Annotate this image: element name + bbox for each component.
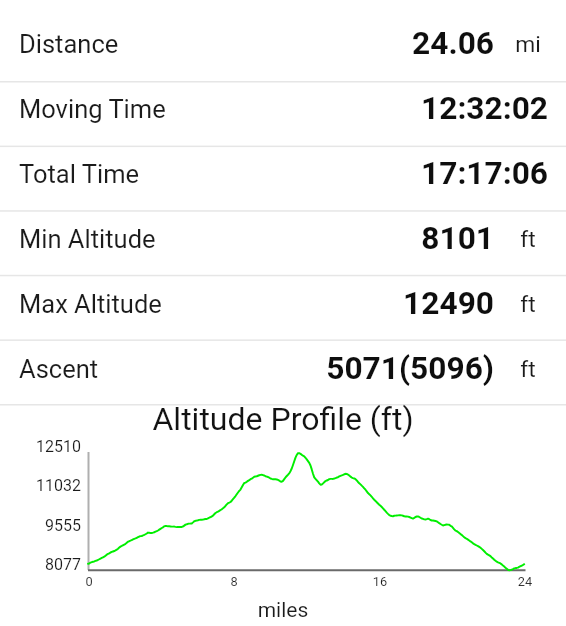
staticText: 12490 — [0, 285, 494, 322]
staticText: 9555 — [0, 516, 81, 535]
button[interactable]: Total Time — [0, 146, 566, 211]
button[interactable]: Min Altitude — [0, 211, 566, 276]
staticText: Distance — [19, 29, 119, 59]
staticText: ft — [494, 226, 562, 253]
button[interactable]: Ascent — [0, 341, 566, 406]
staticText: 12:32:02 — [0, 90, 548, 127]
staticText: 0 — [59, 574, 119, 589]
staticText: ft — [494, 356, 562, 383]
staticText: Ascent — [19, 354, 99, 384]
button[interactable]: Max Altitude — [0, 276, 566, 341]
button[interactable]: Moving Time — [0, 81, 566, 146]
staticText: 8077 — [0, 555, 81, 574]
staticText: 17:17:06 — [0, 155, 548, 192]
staticText: Min Altitude — [19, 224, 156, 254]
staticText: 8 — [204, 574, 264, 589]
staticText: Altitude Profile (ft) — [0, 400, 566, 438]
staticText: 5071(5096) — [0, 350, 494, 387]
staticText: 12510 — [0, 437, 81, 456]
staticText: 16 — [350, 574, 410, 589]
staticText: 24 — [495, 574, 555, 589]
staticText: mi — [494, 31, 562, 58]
staticText: Moving Time — [19, 94, 166, 124]
staticText: Total Time — [19, 159, 140, 189]
staticText: ft — [494, 291, 562, 318]
staticText: 24.06 — [0, 25, 494, 62]
staticText: miles — [0, 598, 566, 623]
staticText: 11032 — [0, 476, 81, 495]
staticText: Max Altitude — [19, 289, 162, 319]
other: Altitude profile chart — [0, 0, 566, 626]
button[interactable]: Distance — [0, 16, 566, 81]
staticText: 8101 — [0, 220, 494, 257]
